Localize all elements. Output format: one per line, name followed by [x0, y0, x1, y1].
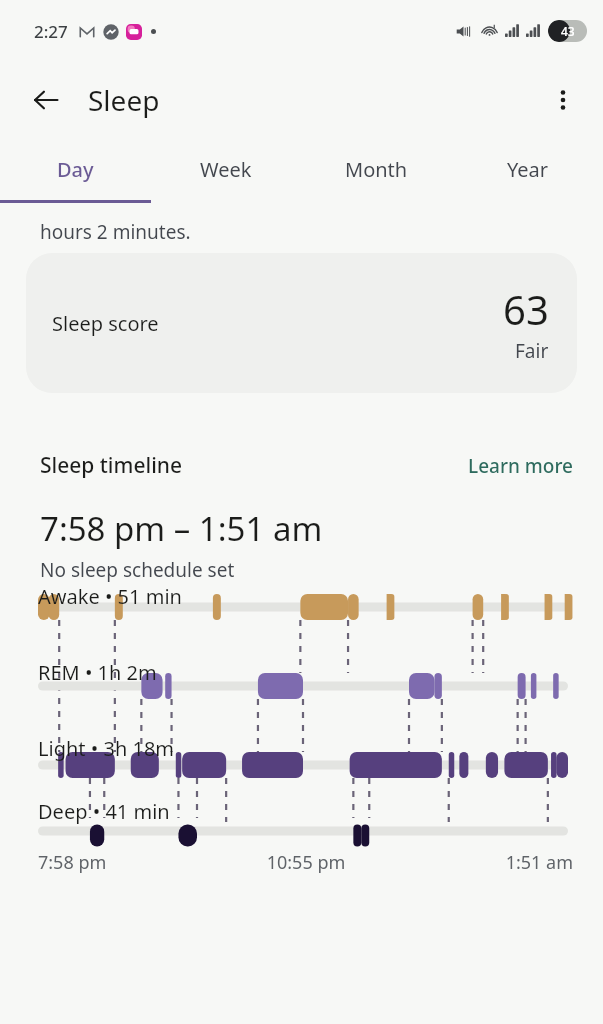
- button[interactable]: Learn more: [468, 453, 573, 479]
- button[interactable]: Back: [22, 76, 70, 124]
- staticText: Day: [57, 156, 94, 183]
- staticText: 1:51 am: [395, 850, 573, 875]
- button[interactable]: Sleep score: [26, 253, 577, 393]
- staticText: Year: [507, 156, 549, 183]
- staticText: 63: [503, 282, 549, 336]
- button[interactable]: More options: [539, 76, 587, 124]
- button[interactable]: Day: [0, 138, 150, 200]
- staticText: Month: [345, 156, 408, 183]
- staticText: Week: [200, 156, 252, 183]
- staticText: 10:55 pm: [217, 850, 395, 875]
- staticText: hours 2 minutes.: [40, 219, 191, 245]
- staticText: 7:58 pm: [38, 850, 217, 875]
- staticText: Fair: [515, 338, 549, 364]
- staticText: Sleep score: [52, 310, 159, 337]
- button[interactable]: Week: [150, 138, 301, 200]
- staticText: Light • 3h 18m: [38, 735, 175, 762]
- staticText: 7:58 pm – 1:51 am: [40, 506, 323, 551]
- staticText: Learn more: [468, 453, 573, 479]
- staticText: REM • 1h 2m: [38, 659, 157, 686]
- staticText: Deep • 41 min: [38, 798, 170, 825]
- staticText: Sleep timeline: [40, 451, 183, 480]
- staticText: 2:27: [34, 20, 68, 43]
- staticText: 43: [561, 23, 575, 39]
- button[interactable]: Month: [301, 138, 452, 200]
- button[interactable]: Year: [452, 138, 603, 200]
- staticText: Awake • 51 min: [38, 583, 182, 610]
- staticText: Sleep: [88, 81, 160, 119]
- staticText: No sleep schedule set: [40, 557, 235, 583]
